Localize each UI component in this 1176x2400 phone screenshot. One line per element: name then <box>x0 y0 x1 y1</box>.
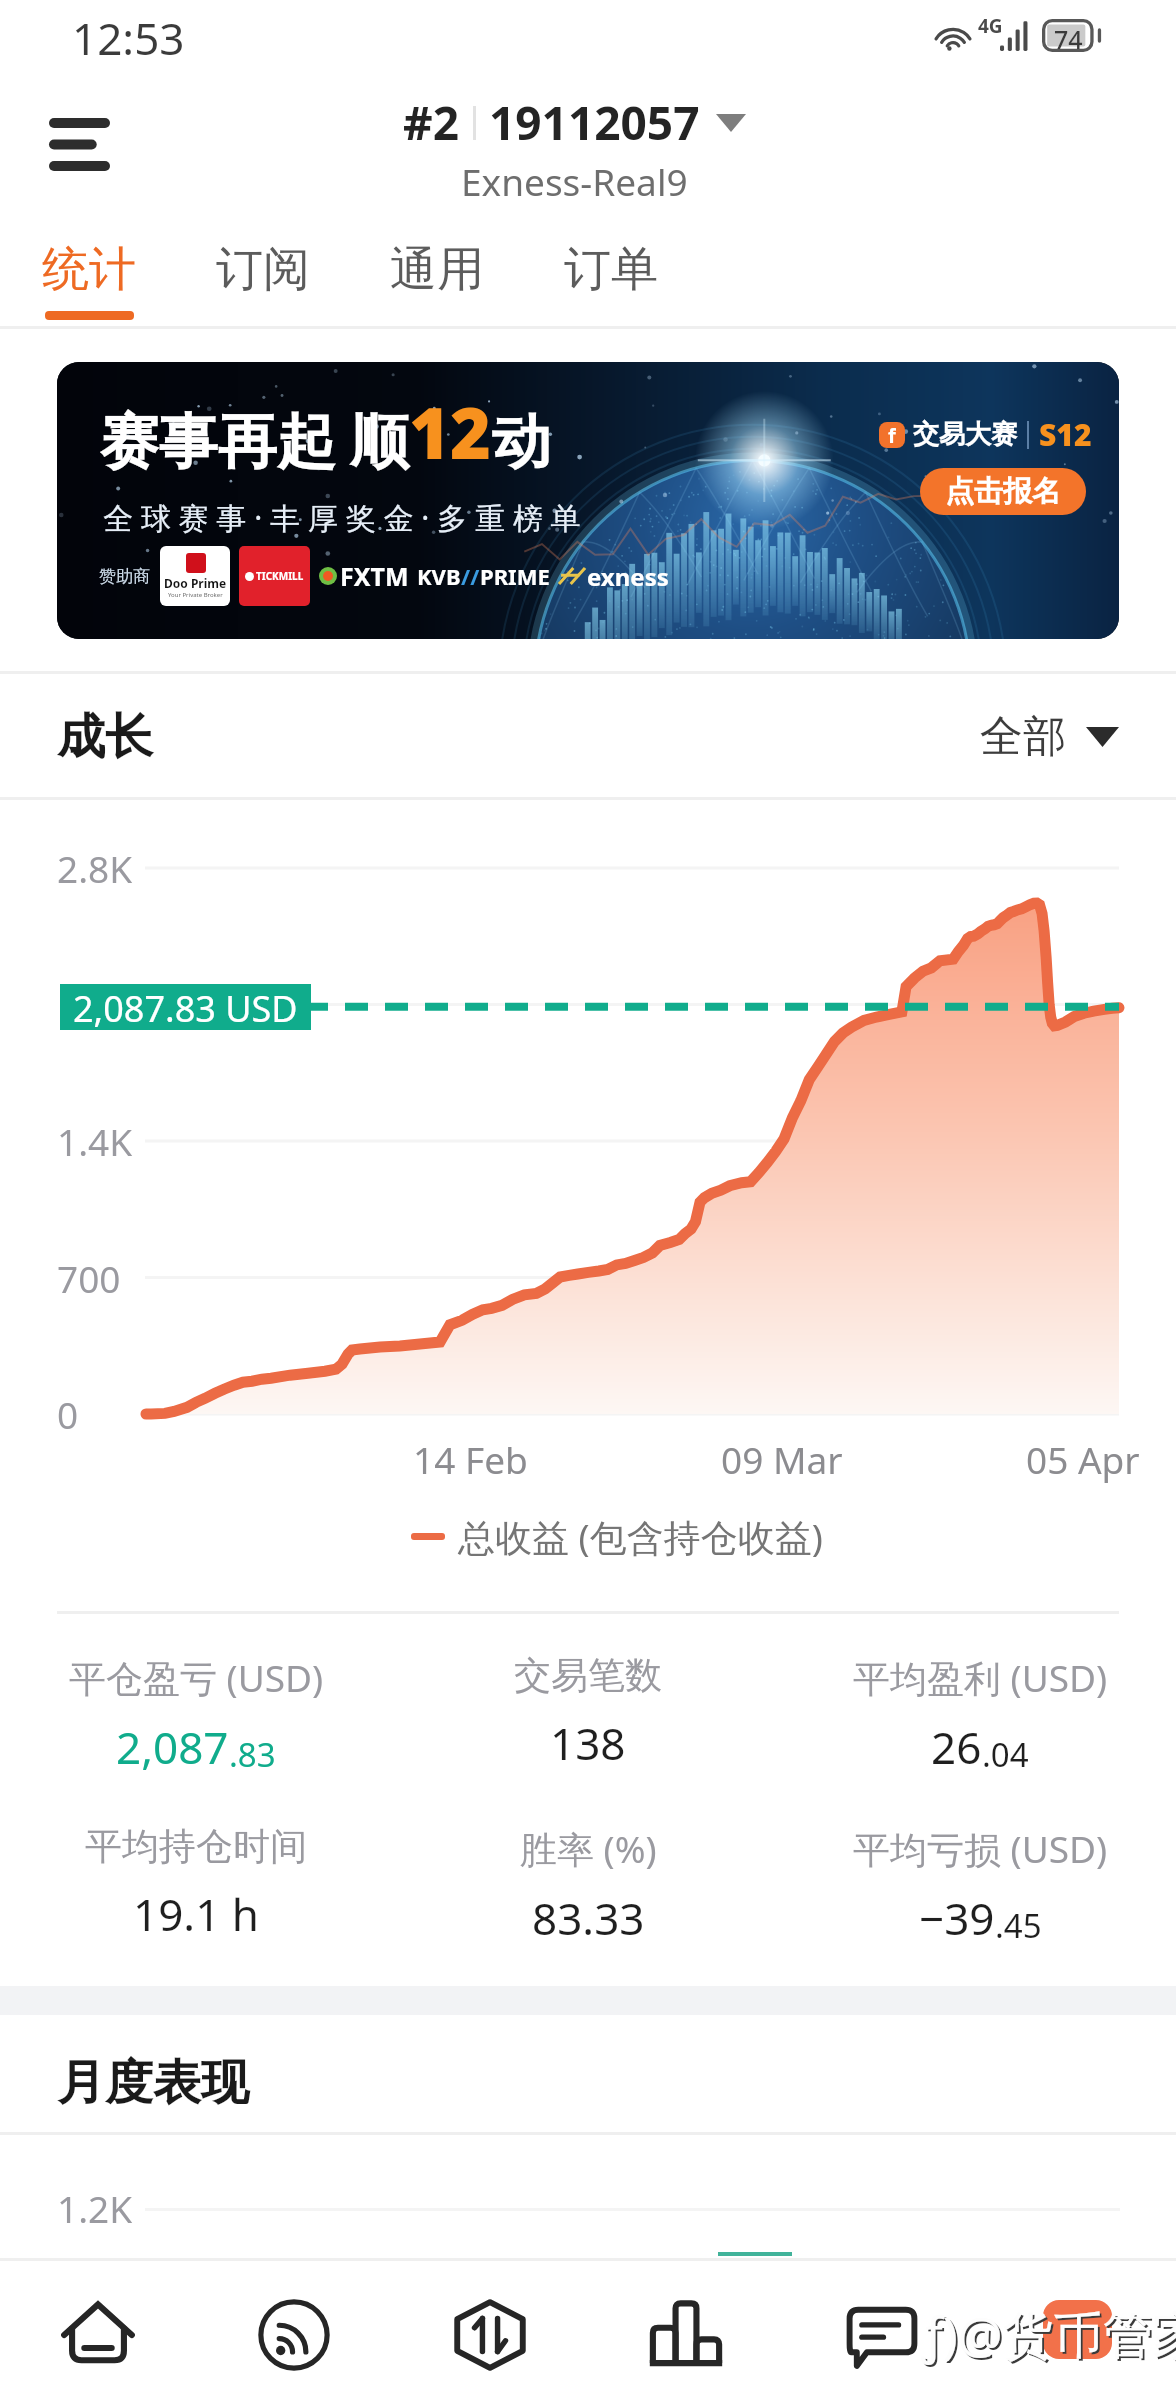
staticText: TICKMILL <box>256 569 304 583</box>
button[interactable]: 点击报名 <box>920 468 1086 515</box>
staticText: 平均亏损 (USD) <box>853 1823 1108 1874</box>
staticText: 2.8K <box>57 843 133 893</box>
staticText: 订阅 <box>216 240 310 299</box>
staticText: 订单 <box>564 240 658 299</box>
staticText: 平仓盈亏 (USD) <box>69 1652 324 1703</box>
button[interactable]: 统计 <box>42 228 136 329</box>
staticText: 19.1 h <box>133 1884 259 1944</box>
button[interactable]: 平仓盈亏 (USD) <box>0 1652 392 1777</box>
staticText: 05 Apr <box>1026 1434 1140 1484</box>
staticText: 平均盈利 (USD) <box>853 1652 1108 1703</box>
staticText: 26 <box>931 1717 982 1777</box>
staticText: 通用 <box>390 240 484 299</box>
staticText: .45 <box>995 1903 1042 1948</box>
staticText: KVB <box>417 561 461 591</box>
staticText: 交易笔数 <box>514 1652 662 1699</box>
button[interactable]: 通用 <box>390 228 484 329</box>
button[interactable]: 平均亏损 (USD) <box>784 1823 1176 1948</box>
staticText: PRIME <box>480 561 550 591</box>
button[interactable]: 全部 <box>980 710 1119 764</box>
staticText: 0 <box>57 1389 79 1439</box>
button[interactable]: 平均盈利 (USD) <box>784 1652 1176 1777</box>
staticText: Exness-Real9 <box>461 156 688 206</box>
staticText: 赞助商 <box>99 566 150 587</box>
button[interactable]: Trade <box>392 2258 588 2400</box>
staticText: 总收益 (包含持仓收益) <box>458 1511 823 1562</box>
button[interactable]: Home <box>0 2258 196 2400</box>
staticText: 09 Mar <box>721 1434 843 1484</box>
staticText: 2,087 <box>116 1717 229 1777</box>
staticText: 14 Feb <box>413 1434 528 1484</box>
button[interactable]: 平均持仓时间 <box>0 1823 392 1944</box>
staticText: 12:53 <box>72 8 185 68</box>
staticText: 月度表现 <box>57 2053 249 2113</box>
staticText: 点击报名 <box>945 473 1061 510</box>
staticText: 12 <box>409 384 492 479</box>
staticText: .83 <box>229 1732 276 1777</box>
staticText: 平均持仓时间 <box>85 1823 307 1870</box>
button[interactable]: 订单 <box>564 228 658 329</box>
staticText: 1.2K <box>57 2183 133 2233</box>
staticText: 交易大赛 <box>913 418 1017 451</box>
button[interactable]: Messages <box>784 2258 980 2400</box>
staticText: −39 <box>919 1888 995 1948</box>
button[interactable]: 胜率 (%) <box>392 1823 784 1948</box>
staticText: 83.33 <box>532 1888 645 1948</box>
staticText: 4G <box>978 13 1003 39</box>
staticText: Doo Prime <box>164 575 227 591</box>
staticText: S12 <box>1039 414 1092 455</box>
staticText: 700 <box>57 1253 121 1303</box>
staticText: 全 球 赛 事 · 丰 厚 奖 金 · 多 重 榜 单 <box>103 497 581 538</box>
staticText: exness <box>587 560 669 593</box>
staticText: f <box>888 422 896 448</box>
staticText: ƒ)@货币管家 <box>924 2302 1176 2370</box>
staticText: 74 <box>1054 22 1083 56</box>
staticText: 1.4K <box>57 1116 133 1166</box>
staticText: // <box>461 561 480 591</box>
staticText: 统计 <box>42 240 136 299</box>
staticText: #2 <box>403 91 460 154</box>
staticText: 成长 <box>57 707 153 767</box>
button[interactable]: 交易笔数 <box>392 1652 784 1773</box>
button[interactable]: Trading contest banner <box>57 362 1119 639</box>
staticText: .04 <box>982 1732 1029 1777</box>
button[interactable]: 订阅 <box>216 228 310 329</box>
staticText: 19112057 <box>489 91 700 154</box>
staticText: 胜率 (%) <box>520 1823 657 1874</box>
staticText: 顺 <box>350 405 409 479</box>
staticText: 赛事再起 <box>100 405 336 479</box>
button[interactable]: Profile <box>980 2258 1176 2400</box>
staticText: 全部 <box>980 710 1066 764</box>
button[interactable]: Signals <box>196 2258 392 2400</box>
staticText: 138 <box>550 1713 626 1773</box>
staticText: Your Private Broker <box>168 591 223 599</box>
button[interactable]: #2 <box>403 91 746 206</box>
staticText: FXTM <box>340 559 409 593</box>
staticText: 2,087.83 USD <box>73 984 298 1030</box>
staticText: ƒ)@货币管家 <box>922 2300 1176 2368</box>
button[interactable]: Statistics <box>588 2258 784 2400</box>
button[interactable]: Menu <box>9 76 149 228</box>
button[interactable]: 总收益 (包含持仓收益) <box>411 1511 823 1562</box>
staticText: 动 <box>492 405 551 479</box>
